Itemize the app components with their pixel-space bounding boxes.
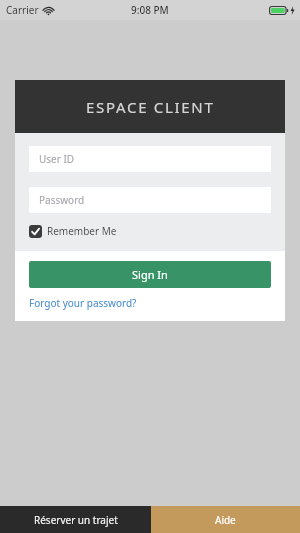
button[interactable]: Réserver un trajet bbox=[0, 506, 151, 533]
button[interactable]: User ID bbox=[29, 146, 271, 172]
staticText: Carrier bbox=[6, 3, 39, 17]
other: Battery bbox=[269, 6, 289, 15]
button[interactable]: Password bbox=[29, 187, 271, 213]
staticText: 9:08 PM bbox=[131, 3, 169, 17]
staticText: Sign In bbox=[132, 267, 168, 282]
button[interactable]: Remember Me bbox=[29, 224, 117, 238]
button[interactable]: Forgot your password? bbox=[29, 296, 137, 310]
staticText: Forgot your password? bbox=[29, 296, 137, 310]
staticText: Remember Me bbox=[47, 224, 117, 238]
staticText: Réserver un trajet bbox=[34, 513, 118, 527]
staticText: ESPACE CLIENT bbox=[86, 97, 215, 117]
button[interactable]: Sign In bbox=[29, 261, 271, 288]
other: Wi-Fi bbox=[43, 6, 54, 15]
button[interactable]: Aide bbox=[151, 506, 300, 533]
staticText: Aide bbox=[215, 513, 236, 527]
staticText: User ID bbox=[39, 152, 75, 166]
staticText: Password bbox=[39, 193, 85, 207]
